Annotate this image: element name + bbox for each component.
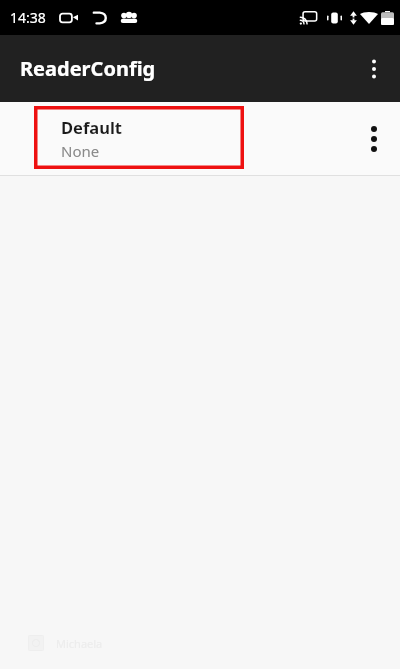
staticText: Default bbox=[61, 116, 123, 138]
button[interactable]: More options bbox=[348, 35, 400, 102]
staticText: Michaela bbox=[56, 636, 103, 651]
staticText: 14:38 bbox=[10, 8, 46, 27]
button[interactable]: Item options bbox=[348, 102, 400, 175]
staticText: None bbox=[61, 141, 100, 161]
button[interactable]: Default bbox=[0, 102, 400, 175]
staticText: ReaderConfig bbox=[20, 55, 156, 82]
